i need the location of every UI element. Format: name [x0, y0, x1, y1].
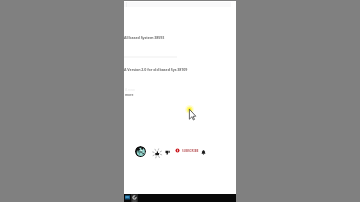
button[interactable]: Notifications — [200, 149, 207, 156]
staticText: SUBSCRIBE — [182, 149, 199, 153]
button[interactable]: File Explorer — [125, 195, 130, 200]
button[interactable]: Browser — [131, 194, 138, 202]
staticText: more — [125, 93, 134, 97]
button[interactable]: Like — [151, 147, 163, 159]
button[interactable]: Dislike — [164, 149, 172, 157]
button[interactable]: SUBSCRIBE — [175, 148, 199, 153]
staticText: A new — [125, 87, 135, 92]
staticText: All based System 38593 — [124, 35, 165, 40]
staticText: A Version 2.0 for old based Sys 38109 — [124, 67, 188, 72]
button[interactable]: Channel avatar — [135, 146, 146, 157]
